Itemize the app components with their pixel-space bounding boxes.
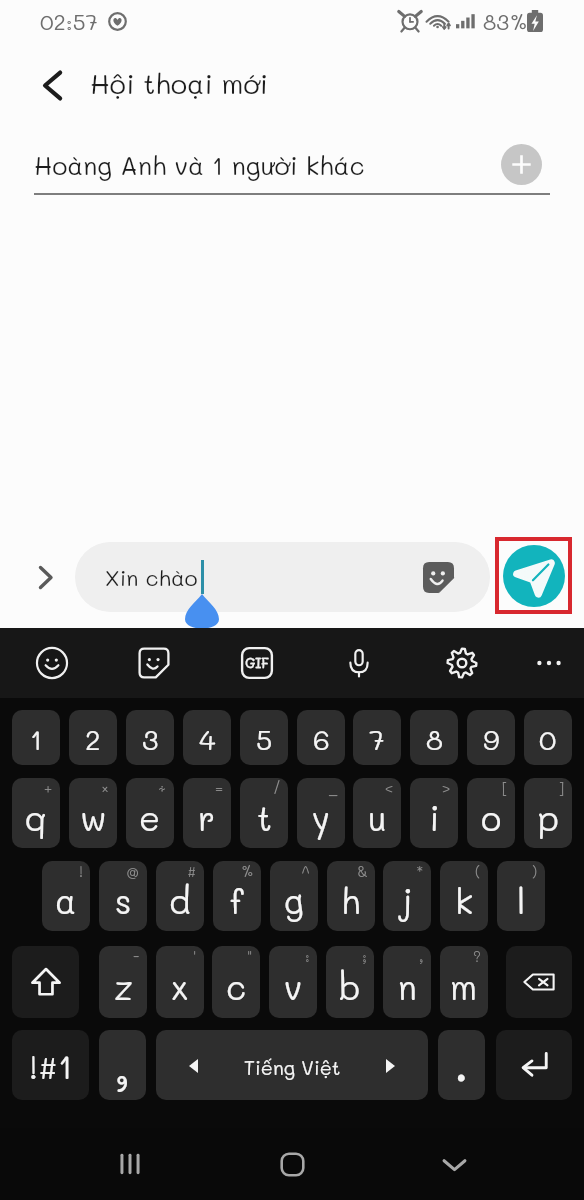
button[interactable]: ) <box>497 861 545 931</box>
button[interactable]: ÷ <box>126 778 174 848</box>
staticText: GIF <box>245 654 269 672</box>
staticText: @ <box>126 861 140 880</box>
button[interactable]: + <box>12 778 60 848</box>
button[interactable]: . <box>438 1030 485 1100</box>
button[interactable]: 1 <box>12 710 60 765</box>
button[interactable]: / <box>240 778 288 848</box>
button[interactable]: * <box>383 861 431 931</box>
button[interactable]: Expand options <box>22 554 68 600</box>
button[interactable]: [ <box>467 778 515 848</box>
button[interactable]: 5 <box>240 710 288 765</box>
staticText: Hoàng Anh và 1 người khác <box>34 148 365 181</box>
staticText: n <box>398 964 417 1008</box>
button[interactable]: Back <box>428 1138 480 1190</box>
button[interactable]: , <box>383 946 431 1018</box>
button[interactable]: % <box>213 861 261 931</box>
staticText: # <box>187 861 197 880</box>
button[interactable]: GIF <box>241 647 273 679</box>
button[interactable]: Backspace <box>506 946 572 1018</box>
button[interactable]: Enter <box>496 1030 572 1100</box>
button[interactable]: ! <box>42 861 90 931</box>
staticText: v <box>284 964 302 1008</box>
button[interactable]: Sticker <box>138 647 170 679</box>
button[interactable]: & <box>327 861 375 931</box>
button[interactable]: = <box>183 778 231 848</box>
button[interactable]: ^ <box>270 861 318 931</box>
staticText: = <box>215 778 224 797</box>
staticText: * <box>416 861 424 880</box>
button[interactable]: Xin chào <box>75 542 490 612</box>
staticText: w <box>80 795 107 839</box>
button[interactable]: ' <box>156 946 204 1018</box>
staticText: 1 <box>30 721 43 757</box>
staticText: c <box>226 964 246 1008</box>
staticText: 7 <box>369 721 385 757</box>
staticText: 3 <box>142 721 159 757</box>
button[interactable]: 6 <box>297 710 345 765</box>
staticText: Tiếng Việt <box>244 1055 341 1080</box>
staticText: u <box>368 795 387 839</box>
button[interactable]: 4 <box>183 710 231 765</box>
button[interactable]: Recent apps <box>104 1138 156 1190</box>
button[interactable]: Add recipient <box>501 144 542 185</box>
button[interactable]: @ <box>99 861 147 931</box>
staticText: % <box>241 861 254 880</box>
staticText: o <box>481 795 502 839</box>
button[interactable]: # <box>156 861 204 931</box>
button[interactable]: _ <box>297 778 345 848</box>
staticText: , <box>419 946 424 965</box>
button[interactable]: , <box>99 1030 146 1100</box>
button[interactable]: Home <box>266 1138 318 1190</box>
button[interactable]: 3 <box>126 710 174 765</box>
button[interactable]: Back <box>25 59 77 111</box>
staticText: j <box>401 878 413 922</box>
button[interactable]: Voice input <box>343 647 375 679</box>
button[interactable]: Emoji <box>36 647 68 679</box>
button[interactable]: 2 <box>69 710 117 765</box>
button[interactable]: × <box>69 778 117 848</box>
staticText: y <box>312 795 330 839</box>
staticText: a <box>55 878 77 922</box>
staticText: 2 <box>85 721 101 757</box>
button[interactable]: Keyboard settings <box>446 647 478 679</box>
staticText: 9 <box>483 721 500 757</box>
button[interactable]: 9 <box>467 710 515 765</box>
button[interactable]: < <box>353 778 401 848</box>
button[interactable]: Shift <box>12 946 79 1018</box>
staticText: > <box>442 778 451 797</box>
button[interactable]: - <box>99 946 147 1018</box>
staticText: Hội thoại mới <box>90 65 269 101</box>
staticText: ] <box>559 778 565 797</box>
staticText: _ <box>329 778 338 797</box>
button[interactable]: ( <box>440 861 488 931</box>
staticText: ; <box>362 946 367 965</box>
button[interactable]: ; <box>326 946 374 1018</box>
staticText: , <box>114 1030 131 1096</box>
staticText: < <box>385 778 394 797</box>
staticText: " <box>247 946 253 965</box>
staticText: f <box>230 878 244 922</box>
staticText: e <box>139 795 161 839</box>
staticText: . <box>453 1030 470 1093</box>
staticText: / <box>273 778 281 797</box>
button[interactable]: 7 <box>353 710 401 765</box>
staticText: i <box>429 795 440 839</box>
button[interactable]: 8 <box>410 710 458 765</box>
button[interactable]: : <box>269 946 317 1018</box>
button[interactable]: More options <box>533 647 565 679</box>
staticText: - <box>133 946 140 965</box>
button[interactable]: " <box>212 946 260 1018</box>
staticText: ^ <box>301 861 311 880</box>
staticText: p <box>538 795 559 839</box>
button[interactable]: 0 <box>524 710 572 765</box>
button[interactable]: Stickers <box>419 558 457 596</box>
button[interactable]: ? <box>440 946 488 1018</box>
button[interactable]: Send <box>495 537 572 614</box>
staticText: ) <box>532 861 538 880</box>
button[interactable]: ] <box>524 778 572 848</box>
staticText: 4 <box>199 721 216 757</box>
button[interactable]: > <box>410 778 458 848</box>
button[interactable]: Tiếng Việt <box>156 1030 428 1100</box>
button[interactable]: !#1 <box>12 1030 89 1100</box>
staticText: [ <box>502 778 508 797</box>
